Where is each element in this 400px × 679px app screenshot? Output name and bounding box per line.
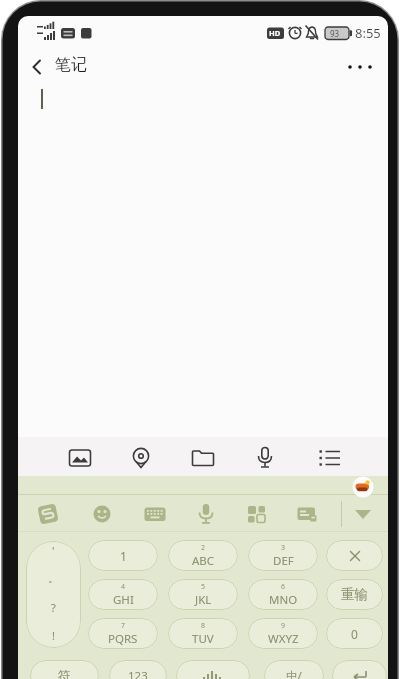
button[interactable] — [289, 496, 325, 532]
button[interactable] — [183, 441, 223, 475]
staticText: 。 — [48, 571, 59, 585]
button[interactable]: 2 — [168, 540, 238, 571]
staticText: 笔记 — [55, 55, 87, 75]
staticText: 7 — [121, 621, 126, 631]
button[interactable]: 符 — [30, 660, 99, 679]
button[interactable]: 9 — [248, 618, 318, 649]
button[interactable] — [121, 441, 161, 475]
staticText: 9 — [281, 621, 286, 631]
button[interactable]: 8 — [168, 618, 238, 649]
staticText: 1 — [120, 548, 127, 564]
button[interactable] — [326, 540, 383, 571]
staticText: ? — [51, 600, 56, 615]
staticText: 中/ — [286, 668, 302, 679]
staticText: 3 — [281, 543, 286, 553]
button[interactable] — [84, 496, 120, 532]
button[interactable]: 5 — [168, 579, 238, 610]
staticText: JKL — [195, 592, 212, 608]
staticText: 0 — [351, 626, 358, 642]
button[interactable]: 中/ — [264, 660, 324, 679]
staticText: DEF — [273, 553, 294, 569]
staticText: TUV — [192, 631, 214, 647]
staticText: 5 — [201, 582, 206, 592]
button[interactable]: 6 — [248, 579, 318, 610]
staticText: 2 — [201, 543, 206, 553]
button[interactable] — [137, 496, 173, 532]
staticText: GHI — [113, 592, 134, 608]
staticText: 8:55 — [355, 24, 381, 42]
button[interactable] — [245, 441, 285, 475]
button[interactable] — [60, 441, 100, 475]
staticText: MNO — [269, 592, 298, 608]
button[interactable]: 7 — [88, 618, 158, 649]
button[interactable]: 0 — [326, 618, 383, 649]
button[interactable] — [188, 496, 224, 532]
button[interactable] — [342, 50, 380, 84]
button[interactable] — [239, 496, 275, 532]
staticText: HD — [269, 28, 281, 38]
staticText: 123 — [128, 668, 148, 679]
staticText: ! — [52, 628, 55, 643]
staticText: 8 — [201, 621, 206, 631]
button[interactable] — [310, 441, 350, 475]
staticText: WXYZ — [268, 631, 299, 647]
button[interactable]: 1 — [88, 540, 158, 571]
button[interactable] — [30, 496, 66, 532]
button[interactable] — [348, 496, 378, 532]
staticText: PQRS — [108, 631, 138, 647]
staticText: ' — [52, 543, 55, 558]
button[interactable]: 重输 — [326, 579, 383, 610]
button[interactable]: 4 — [88, 579, 158, 610]
staticText: 4 — [121, 582, 126, 592]
staticText: 符 — [58, 668, 71, 679]
button[interactable] — [332, 660, 387, 679]
button[interactable]: 3 — [248, 540, 318, 571]
button[interactable] — [176, 660, 250, 679]
staticText: 93 — [330, 28, 340, 39]
button[interactable]: ' — [26, 541, 81, 648]
staticText: 重输 — [341, 586, 368, 603]
staticText: ABC — [192, 553, 215, 569]
staticText: 6 — [281, 582, 286, 592]
button[interactable]: 123 — [109, 660, 167, 679]
button[interactable] — [22, 50, 52, 84]
